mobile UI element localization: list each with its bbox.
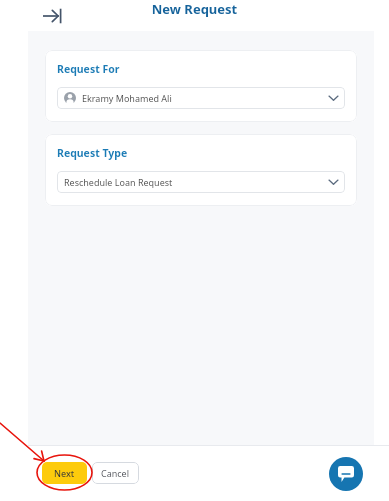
staticText: Ekramy Mohamed Ali: [82, 92, 329, 104]
button[interactable]: Cancel: [92, 462, 139, 484]
button[interactable]: Next: [42, 462, 87, 484]
staticText: Request For: [57, 62, 120, 76]
staticText: New Request: [0, 0, 389, 18]
staticText: Next: [54, 467, 75, 479]
button[interactable]: Open chat support: [329, 457, 363, 491]
button[interactable]: Ekramy Mohamed Ali: [57, 87, 345, 109]
staticText: Reschedule Loan Request: [64, 176, 329, 188]
button[interactable]: Reschedule Loan Request: [57, 171, 345, 193]
staticText: Request Type: [57, 146, 128, 160]
button[interactable]: Collapse panel: [38, 0, 68, 31]
staticText: Cancel: [101, 467, 130, 479]
